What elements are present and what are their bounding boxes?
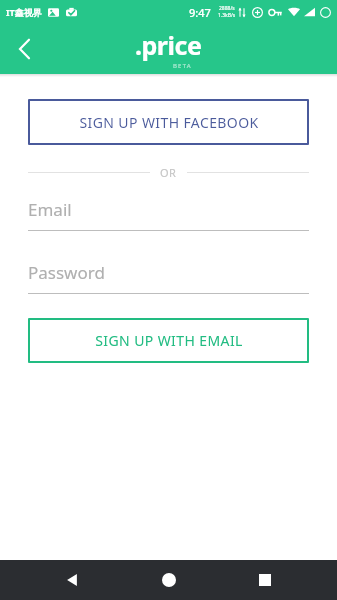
staticText: BETA (173, 62, 192, 70)
button[interactable]: Password (28, 261, 309, 294)
button[interactable]: Back (48, 560, 96, 600)
staticText: OR (160, 165, 177, 180)
staticText: Password (28, 261, 105, 284)
button[interactable]: SIGN UP WITH FACEBOOK (28, 99, 309, 145)
staticText: 2888/s (219, 5, 235, 12)
staticText: IT鑫视界 (6, 6, 42, 18)
button[interactable]: Email (28, 198, 309, 231)
button[interactable]: SIGN UP WITH EMAIL (28, 318, 309, 363)
staticText: .price (135, 28, 202, 62)
staticText: 1.3kB/s (218, 12, 236, 19)
staticText: Email (28, 198, 72, 221)
staticText: SIGN UP WITH FACEBOOK (79, 113, 259, 132)
button[interactable]: Home (145, 560, 193, 600)
staticText: SIGN UP WITH EMAIL (95, 331, 243, 350)
button[interactable]: Recent apps (241, 560, 289, 600)
staticText: 9:47 (189, 5, 211, 20)
button[interactable]: Back (0, 25, 48, 73)
